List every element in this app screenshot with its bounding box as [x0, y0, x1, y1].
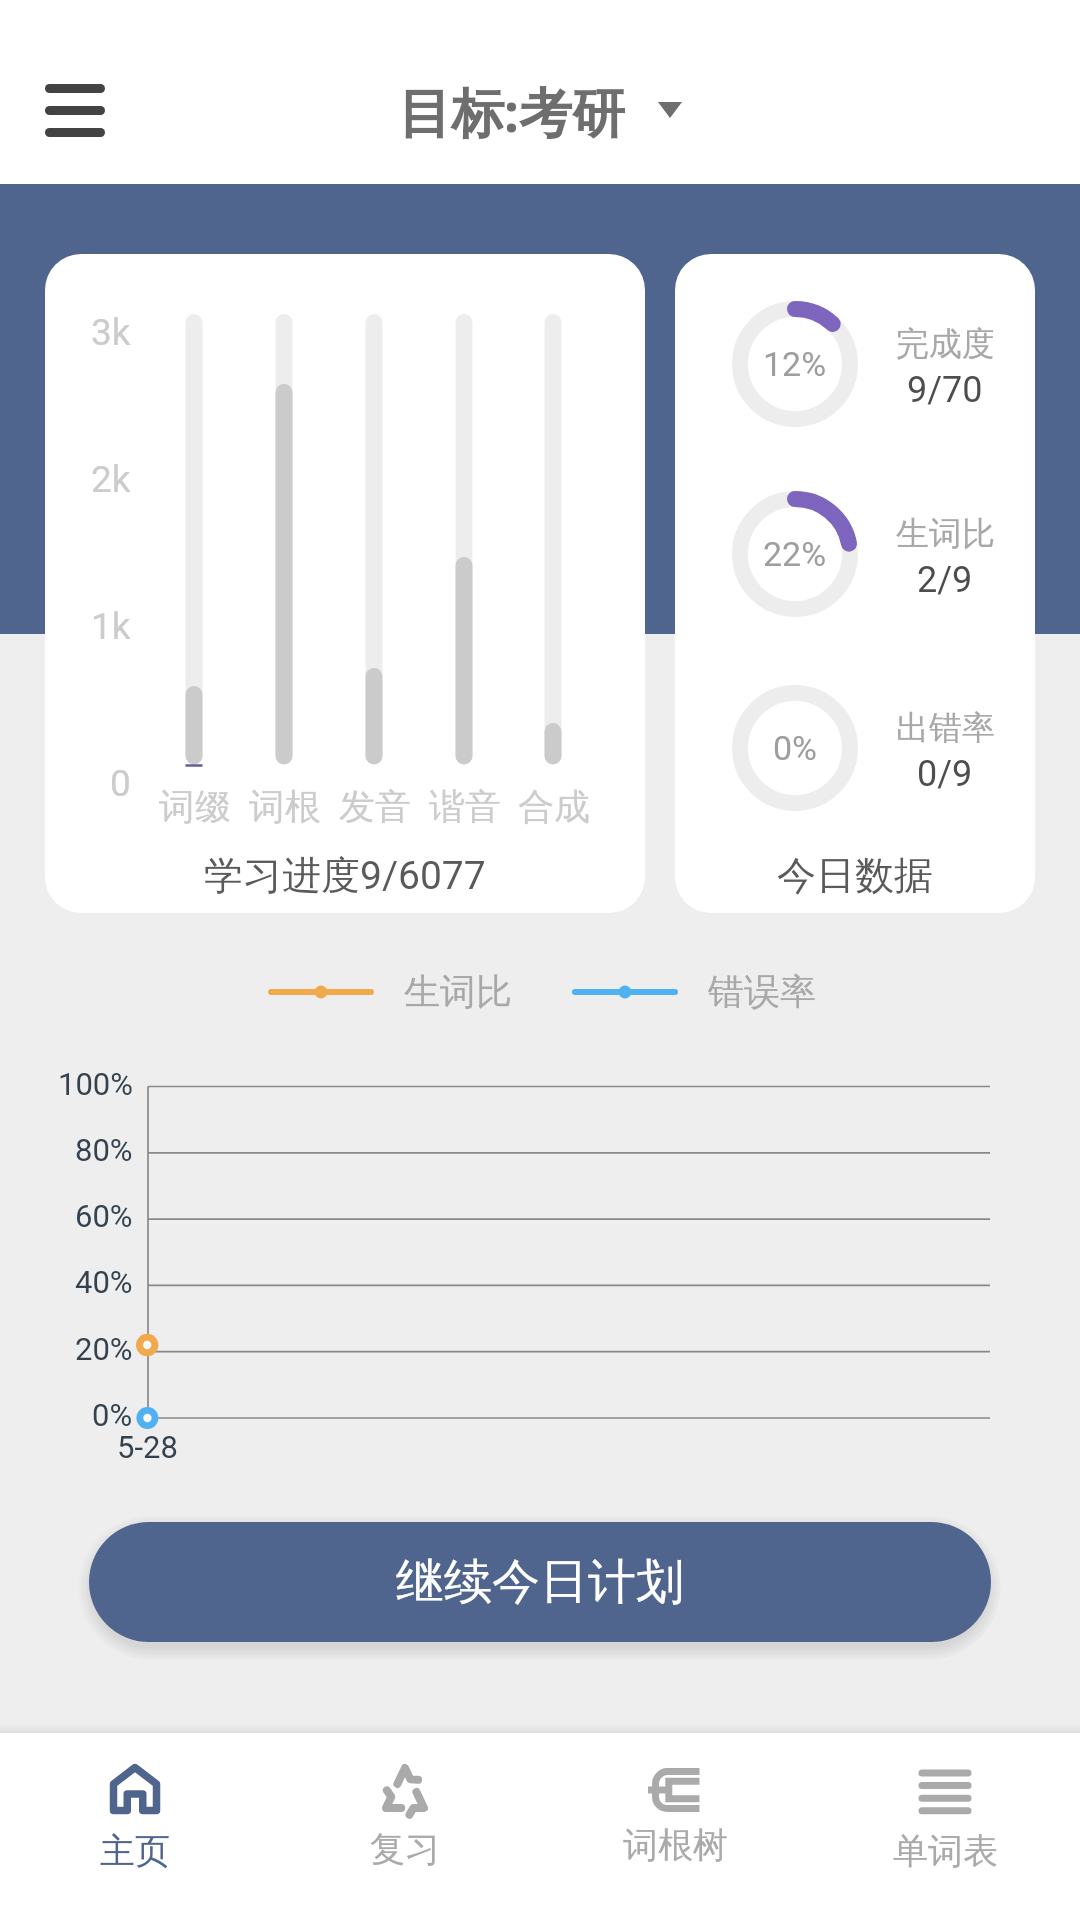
staticText: 12%	[763, 344, 827, 384]
staticText: 100%	[58, 1066, 133, 1102]
staticText: 22%	[763, 534, 827, 574]
staticText: 出错率	[896, 707, 995, 749]
button[interactable]: 12%	[675, 254, 1035, 913]
staticText: 40%	[75, 1264, 133, 1300]
button[interactable]: 单词表	[810, 1733, 1080, 1920]
button[interactable]: 主页	[0, 1733, 270, 1920]
staticText: 学习进度9/6077	[204, 851, 486, 900]
staticText: 复习	[370, 1827, 440, 1871]
button[interactable]: 错误率	[575, 969, 816, 1014]
staticText: 发音	[339, 784, 411, 829]
staticText: 错误率	[708, 969, 816, 1014]
button[interactable]: 复习	[270, 1733, 540, 1920]
staticText: 目标:考研	[398, 75, 625, 147]
staticText: 0/9	[917, 753, 973, 795]
staticText: 9/70	[907, 369, 983, 411]
button[interactable]: Menu	[23, 58, 127, 162]
button[interactable]: 生词比	[271, 969, 512, 1014]
staticText: 80%	[75, 1132, 133, 1168]
staticText: 1k	[91, 605, 131, 648]
staticText: 继续今日计划	[396, 1552, 684, 1612]
staticText: 单词表	[893, 1829, 998, 1873]
button[interactable]: 继续今日计划	[89, 1522, 991, 1642]
button[interactable]: 词根树	[540, 1733, 810, 1920]
staticText: 2k	[91, 458, 131, 501]
staticText: 词缀	[159, 784, 231, 829]
staticText: 5-28	[117, 1429, 178, 1465]
staticText: 生词比	[896, 513, 995, 555]
staticText: 谐音	[429, 784, 501, 829]
staticText: 合成	[518, 784, 590, 829]
staticText: 0%	[92, 1397, 133, 1433]
staticText: 主页	[100, 1829, 170, 1873]
staticText: 词根	[249, 784, 321, 829]
staticText: 0%	[773, 728, 818, 768]
staticText: 生词比	[404, 969, 512, 1014]
staticText: 完成度	[896, 323, 995, 365]
staticText: 20%	[75, 1331, 133, 1367]
staticText: 3k	[91, 311, 131, 354]
staticText: 词根树	[623, 1823, 728, 1867]
staticText: 今日数据	[777, 851, 933, 900]
button[interactable]: 3k	[45, 254, 645, 913]
staticText: 60%	[75, 1198, 133, 1234]
staticText: 2/9	[917, 559, 973, 601]
staticText: 0	[110, 762, 131, 805]
button[interactable]: 目标:考研	[398, 75, 682, 147]
